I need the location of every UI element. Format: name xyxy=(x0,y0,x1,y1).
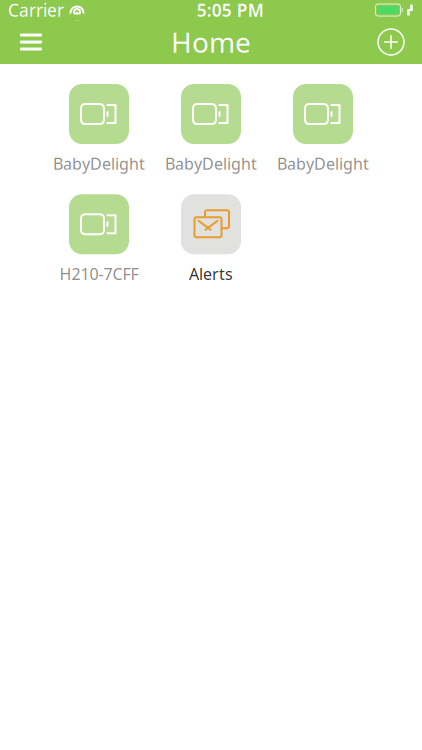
staticText: BabyDelight xyxy=(277,153,369,174)
staticText: H210-7CFF xyxy=(59,263,138,284)
button[interactable]: Alerts xyxy=(155,194,267,284)
button[interactable]: BabyDelight xyxy=(43,84,155,174)
staticText: BabyDelight xyxy=(53,153,145,174)
staticText: Alerts xyxy=(189,263,233,284)
staticText: Home xyxy=(171,23,251,61)
button[interactable]: BabyDelight xyxy=(267,84,379,174)
staticText: Carrier xyxy=(8,0,64,21)
staticText: 5:05 PM xyxy=(197,0,264,21)
staticText: BabyDelight xyxy=(165,153,257,174)
button[interactable]: Add camera xyxy=(368,20,414,64)
button[interactable]: Menu xyxy=(8,20,54,64)
button[interactable]: H210-7CFF xyxy=(43,194,155,284)
button[interactable]: BabyDelight xyxy=(155,84,267,174)
